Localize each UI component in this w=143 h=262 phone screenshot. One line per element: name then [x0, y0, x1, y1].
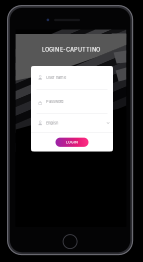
button[interactable]: User name: [31, 66, 113, 89]
staticText: LOGIN: [66, 140, 78, 144]
staticText: English: [46, 121, 58, 125]
button[interactable]: Password: [31, 90, 113, 113]
button[interactable]: English: [31, 114, 113, 132]
staticText: LOGIN E-CAPUTTINO: [42, 46, 100, 53]
button[interactable]: LOGIN: [55, 138, 88, 147]
staticText: Password: [46, 99, 63, 104]
staticText: User name: [46, 75, 66, 80]
